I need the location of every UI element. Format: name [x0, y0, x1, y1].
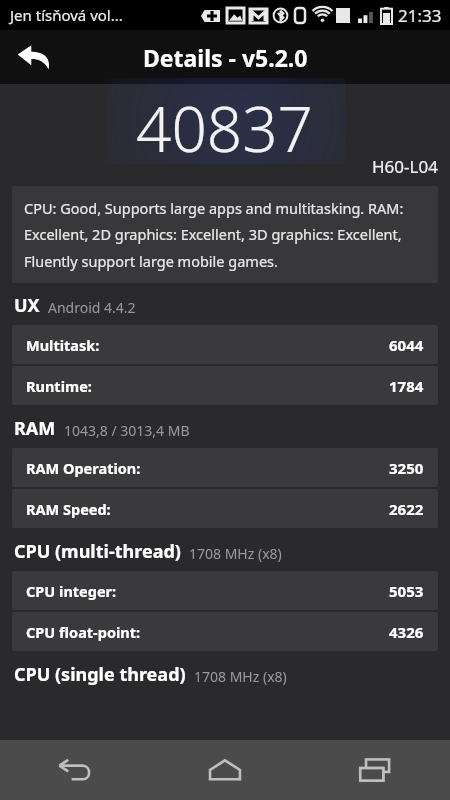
staticText: CPU (single thread): [14, 662, 186, 687]
staticText: 1043,8 / 3013,4 MB: [64, 421, 190, 440]
staticText: 5053: [389, 581, 424, 601]
staticText: CPU integer:: [26, 581, 117, 601]
staticText: 6044: [389, 335, 424, 355]
staticText: 1708 MHz (x8): [194, 667, 287, 686]
button[interactable]: RAM Speed:: [12, 489, 438, 528]
button[interactable]: Multitask:: [12, 325, 438, 364]
staticText: 3250: [389, 458, 424, 478]
staticText: UX: [14, 293, 40, 318]
staticText: H60-L04: [372, 155, 438, 178]
staticText: 4326: [389, 622, 424, 642]
staticText: CPU: Good, Supports large apps and multi…: [24, 198, 426, 271]
staticText: 40837: [136, 86, 314, 170]
staticText: RAM Operation:: [26, 458, 141, 478]
button[interactable]: Back: [0, 740, 150, 800]
staticText: RAM: [14, 416, 56, 441]
staticText: 21:33: [398, 4, 442, 27]
staticText: Details - v5.2.0: [143, 42, 308, 73]
button[interactable]: Home: [150, 740, 300, 800]
staticText: Runtime:: [26, 376, 92, 396]
button[interactable]: CPU float-point:: [12, 612, 438, 651]
staticText: Jen tísňová vol...: [10, 5, 123, 25]
staticText: 1708 MHz (x8): [189, 544, 282, 563]
button[interactable]: Back: [8, 31, 60, 83]
staticText: 1784: [389, 376, 424, 396]
staticText: 2622: [389, 499, 424, 519]
staticText: Android 4.4.2: [48, 298, 136, 317]
staticText: CPU (multi-thread): [14, 539, 181, 564]
button[interactable]: RAM Operation:: [12, 448, 438, 487]
button[interactable]: Runtime:: [12, 366, 438, 405]
button[interactable]: CPU integer:: [12, 571, 438, 610]
button[interactable]: Recent apps: [300, 740, 450, 800]
staticText: CPU float-point:: [26, 622, 141, 642]
staticText: RAM Speed:: [26, 499, 111, 519]
staticText: Multitask:: [26, 335, 100, 355]
